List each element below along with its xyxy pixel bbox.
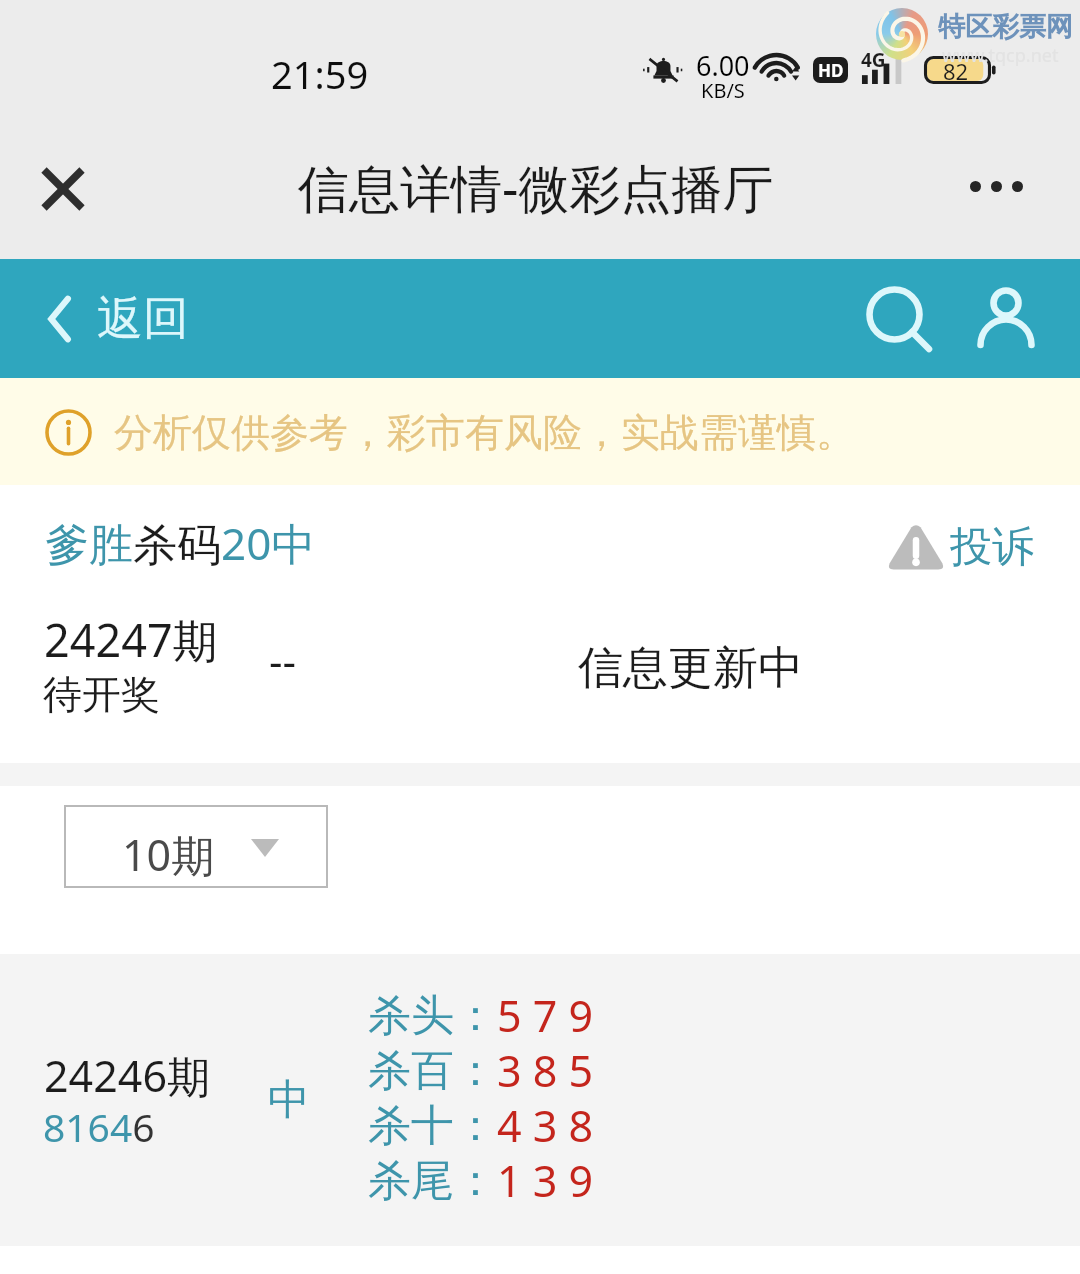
staticText: 中 (268, 1074, 310, 1127)
staticText: 杀头： (368, 989, 497, 1043)
button[interactable]: 10期 (64, 805, 328, 888)
button[interactable]: 返回 (40, 284, 189, 354)
staticText: 6.00 (696, 47, 750, 84)
staticText: 杀十： (368, 1099, 497, 1153)
staticText: 分析仅供参考，彩市有风险，实战需谨慎。 (114, 408, 855, 457)
staticText: www.tqcp.net (942, 43, 1059, 68)
staticText: 21:59 (271, 48, 369, 100)
staticText: 24246期 (44, 1046, 210, 1105)
staticText: 杀尾： (368, 1154, 497, 1208)
button[interactable]: Close (24, 152, 96, 224)
staticText: 82 (943, 56, 969, 84)
staticText: -- (269, 632, 297, 689)
staticText: 5 7 9 (497, 986, 594, 1045)
button[interactable]: 爹胜杀码20中 (30, 508, 360, 578)
staticText: 4G (861, 47, 886, 73)
staticText: 1 3 9 (497, 1151, 594, 1210)
staticText: 返回 (97, 290, 189, 348)
staticText: 杀百： (368, 1044, 497, 1098)
button[interactable]: 投诉 (888, 518, 1034, 576)
staticText: HD (818, 59, 844, 82)
staticText: 待开奖 (43, 670, 160, 719)
button[interactable] (0, 954, 1080, 1246)
button[interactable]: More options (952, 156, 1040, 216)
button[interactable]: Search (850, 276, 938, 364)
staticText: 信息更新中 (578, 640, 803, 697)
staticText: 3 8 5 (497, 1041, 594, 1100)
staticText: 24247期 (44, 609, 218, 670)
staticText: 特区彩票网 (938, 10, 1073, 44)
staticText: 81646 (43, 1100, 155, 1153)
staticText: 投诉 (950, 521, 1034, 574)
staticText: KB/S (701, 77, 745, 104)
staticText: 4 3 8 (497, 1096, 594, 1155)
staticText: 信息详情-微彩点播厅 (298, 152, 774, 222)
button[interactable]: Account (962, 276, 1050, 364)
staticText: 10期 (122, 825, 215, 884)
staticText: 爹胜杀码20中 (45, 513, 316, 573)
